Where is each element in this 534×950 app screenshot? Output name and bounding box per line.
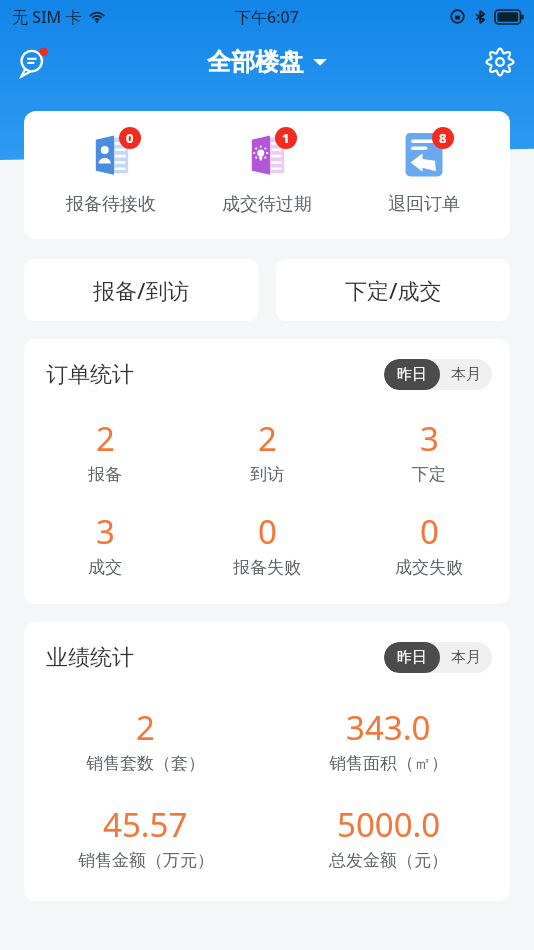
staticText: 成交 [88, 557, 122, 578]
button[interactable]: 8 [354, 123, 494, 216]
staticText: 业绩统计 [46, 644, 134, 672]
staticText: 销售金额（万元） [78, 850, 214, 871]
staticText: 到访 [250, 464, 284, 485]
button[interactable]: 0 [186, 509, 348, 578]
staticText: 总发金额（元） [329, 850, 448, 871]
button[interactable]: 45.57 [24, 802, 267, 871]
button[interactable]: 昨日 [384, 642, 440, 673]
staticText: 2 [136, 705, 155, 750]
button[interactable]: 0 [348, 509, 510, 578]
staticText: 下定/成交 [345, 275, 442, 305]
staticText: 本月 [451, 365, 481, 384]
staticText: 下午6:07 [235, 6, 299, 28]
staticText: 报备待接收 [66, 193, 156, 216]
button[interactable]: 2 [186, 416, 348, 485]
staticText: 无 SIM 卡 [12, 6, 82, 28]
staticText: 昨日 [397, 648, 427, 667]
staticText: 0 [258, 509, 277, 554]
button[interactable]: 报备/到访 [24, 259, 258, 321]
staticText: 销售面积（㎡） [329, 753, 448, 774]
button[interactable]: Settings [476, 38, 524, 86]
staticText: 2 [258, 416, 277, 461]
staticText: 退回订单 [388, 193, 460, 216]
button[interactable]: 5000.0 [267, 802, 510, 871]
staticText: 成交失败 [395, 557, 463, 578]
button[interactable]: 2 [24, 416, 186, 485]
button[interactable]: Messages [10, 38, 58, 86]
staticText: 昨日 [397, 365, 427, 384]
staticText: 0 [126, 129, 134, 147]
staticText: 0 [420, 509, 439, 554]
button[interactable]: 3 [348, 416, 510, 485]
staticText: 报备 [88, 464, 122, 485]
staticText: 45.57 [103, 802, 188, 847]
button[interactable]: 1 [197, 123, 337, 216]
staticText: 343.0 [346, 705, 431, 750]
button[interactable]: 昨日 [384, 359, 440, 390]
staticText: 报备/到访 [93, 275, 190, 305]
staticText: 5000.0 [337, 802, 441, 847]
button[interactable]: 全部楼盘 [207, 47, 327, 77]
button[interactable]: 2 [24, 705, 267, 774]
staticText: 2 [96, 416, 115, 461]
button[interactable]: 343.0 [267, 705, 510, 774]
staticText: 本月 [451, 648, 481, 667]
staticText: 成交待过期 [222, 193, 312, 216]
staticText: 8 [439, 129, 447, 147]
staticText: 3 [420, 416, 439, 461]
staticText: 报备失败 [233, 557, 301, 578]
staticText: 销售套数（套） [86, 753, 205, 774]
staticText: 下定 [412, 464, 446, 485]
button[interactable]: 本月 [440, 359, 492, 390]
staticText: 订单统计 [46, 361, 134, 389]
button[interactable]: 下定/成交 [276, 259, 510, 321]
staticText: 全部楼盘 [207, 47, 303, 77]
staticText: 3 [96, 509, 115, 554]
staticText: 1 [282, 129, 290, 147]
button[interactable]: 本月 [440, 642, 492, 673]
button[interactable]: 0 [41, 123, 181, 216]
button[interactable]: 3 [24, 509, 186, 578]
